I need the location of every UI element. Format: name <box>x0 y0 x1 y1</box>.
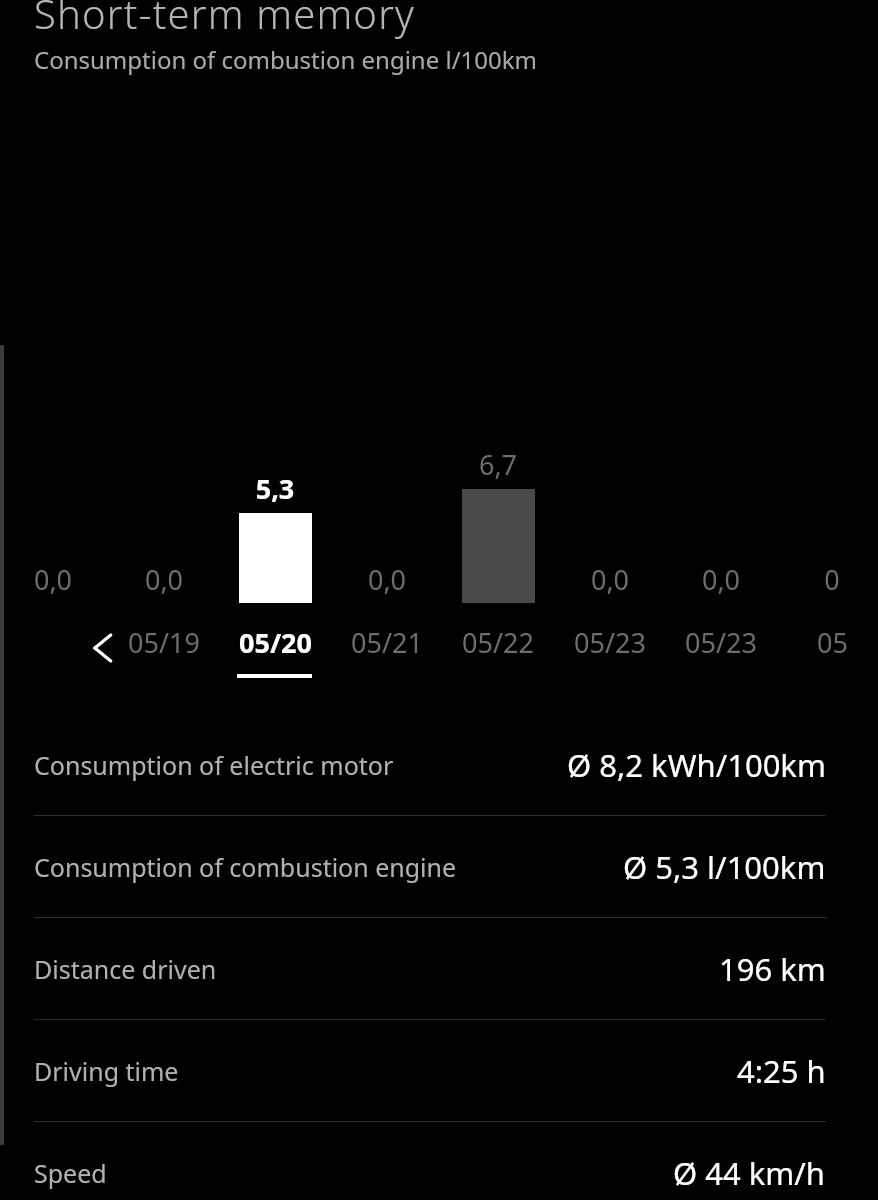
staticText: 0,0 <box>347 561 427 598</box>
staticText: Ø 5,3 l/100km <box>623 846 826 888</box>
button[interactable]: Consumption of combustion engine <box>0 816 878 918</box>
button[interactable]: Speed <box>0 1122 878 1200</box>
staticText: 6,7 <box>458 446 538 483</box>
staticText: Ø 44 km/h <box>673 1152 826 1194</box>
staticText: Ø 8,2 kWh/100km <box>567 744 826 786</box>
button[interactable]: 05/23 <box>555 624 665 680</box>
staticText: 05/19 <box>128 624 200 661</box>
staticText: Speed <box>34 1156 107 1190</box>
staticText: Consumption of combustion engine l/100km <box>34 43 538 76</box>
staticText: Short-term memory <box>34 0 416 40</box>
staticText: 05/23 <box>574 624 646 661</box>
button[interactable]: 05/20 <box>220 624 330 680</box>
staticText: 05/23 <box>685 624 757 661</box>
button[interactable]: 05/19 <box>109 624 219 680</box>
staticText: 0,0 <box>570 561 650 598</box>
staticText: 0,0 <box>13 561 93 598</box>
button[interactable]: 05 <box>777 624 878 680</box>
staticText: 5,3 <box>235 470 315 507</box>
staticText: 05/21 <box>351 624 423 661</box>
staticText: 05/22 <box>462 624 534 661</box>
staticText: 0,0 <box>681 561 761 598</box>
button[interactable]: Distance driven <box>0 918 878 1020</box>
button[interactable]: 05/22 <box>443 624 553 680</box>
button[interactable]: 05/21 <box>332 624 442 680</box>
staticText: 0 <box>792 561 872 598</box>
staticText: Consumption of electric motor <box>34 748 394 782</box>
staticText: Consumption of combustion engine <box>34 850 457 884</box>
staticText: 05/20 <box>239 624 312 661</box>
button[interactable]: Previous day <box>86 628 126 668</box>
staticText: Driving time <box>34 1054 179 1088</box>
staticText: 0,0 <box>124 561 204 598</box>
button[interactable]: Consumption of electric motor <box>0 714 878 816</box>
staticText: 05 <box>817 624 848 661</box>
button[interactable]: Driving time <box>0 1020 878 1122</box>
staticText: 4:25 h <box>737 1050 826 1092</box>
button[interactable]: 05/23 <box>666 624 776 680</box>
staticText: Distance driven <box>34 952 217 986</box>
staticText: 196 km <box>719 948 826 990</box>
